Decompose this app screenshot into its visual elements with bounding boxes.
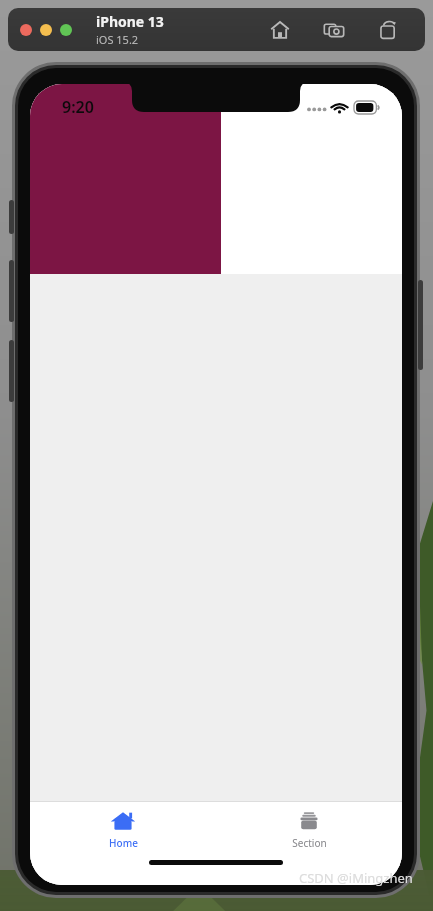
button[interactable]: Section bbox=[216, 802, 402, 851]
staticText: CSDN @iMingzhen bbox=[299, 869, 413, 887]
button[interactable]: Zoom bbox=[60, 24, 72, 36]
staticText: iPhone 13 bbox=[96, 12, 164, 31]
button[interactable]: Minimize bbox=[40, 24, 52, 36]
button[interactable]: Rotate bbox=[375, 17, 401, 43]
staticText: Section bbox=[292, 836, 327, 850]
staticText: iOS 15.2 bbox=[96, 32, 139, 47]
staticText: Home bbox=[109, 836, 138, 850]
staticText: 9:20 bbox=[62, 96, 94, 118]
button[interactable]: Close bbox=[20, 24, 32, 36]
button[interactable]: Home bbox=[267, 17, 293, 43]
button[interactable]: Home bbox=[30, 802, 216, 851]
button[interactable]: Screenshot bbox=[321, 17, 347, 43]
button[interactable] bbox=[30, 84, 221, 274]
